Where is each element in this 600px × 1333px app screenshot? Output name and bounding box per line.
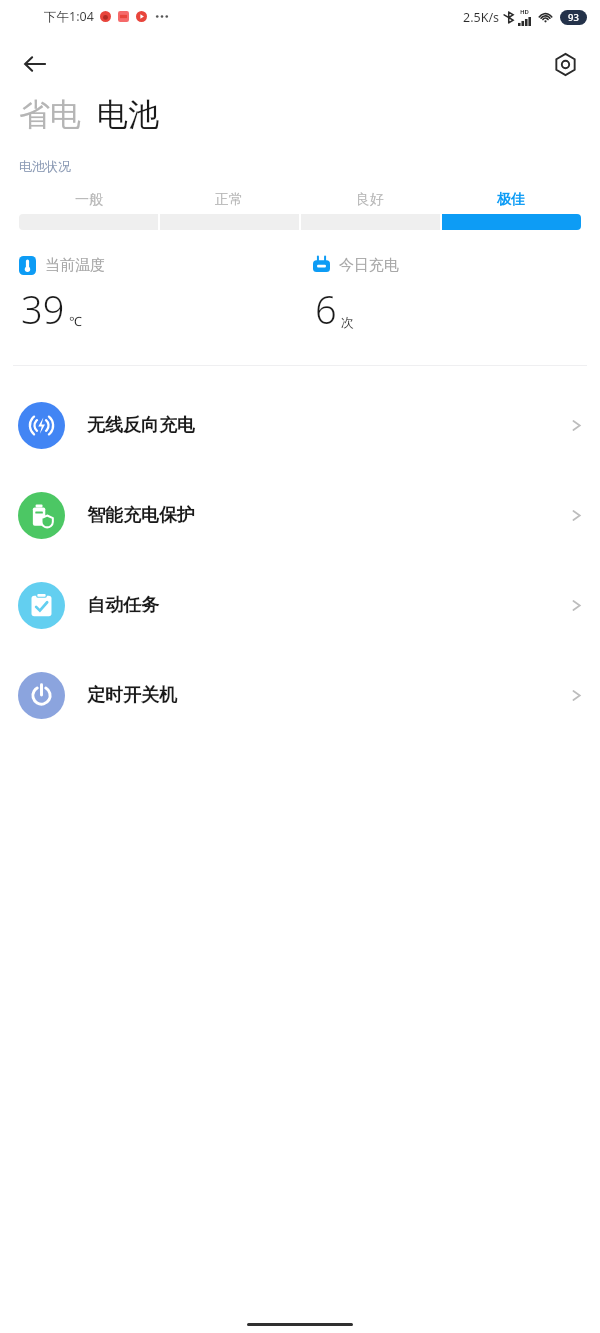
staticText: 正常 (215, 191, 243, 209)
button[interactable] (442, 214, 581, 230)
staticText: 智能充电保护 (87, 504, 195, 527)
staticText: 当前温度 (45, 256, 105, 275)
staticText: 今日充电 (339, 256, 399, 275)
button[interactable]: 无线反向充电 (0, 380, 600, 470)
staticText: 定时开关机 (87, 684, 177, 707)
staticText: 一般 (75, 191, 103, 209)
staticText: ℃ (69, 312, 82, 330)
staticText: 电池 (97, 95, 159, 134)
staticText: 良好 (356, 191, 384, 209)
staticText: 下午1:04 (44, 8, 94, 25)
button[interactable]: 电池 (97, 95, 159, 134)
button[interactable]: 定时开关机 (0, 650, 600, 740)
staticText: 2.5K/s (463, 9, 500, 26)
staticText: 次 (341, 314, 354, 330)
button[interactable]: 智能充电保护 (0, 470, 600, 560)
staticText: 极佳 (497, 191, 525, 209)
button[interactable]: 省电 (19, 95, 81, 134)
button[interactable]: 自动任务 (0, 560, 600, 650)
staticText: 93 (568, 11, 579, 24)
staticText: HD (520, 8, 529, 16)
staticText: 自动任务 (87, 594, 159, 617)
staticText: 无线反向充电 (87, 414, 195, 437)
button[interactable]: Back (11, 40, 59, 88)
staticText: 39 (21, 283, 65, 335)
button[interactable]: Settings (541, 40, 589, 88)
staticText: 电池状况 (19, 158, 71, 174)
staticText: 省电 (19, 95, 81, 134)
staticText: 6 (315, 283, 337, 335)
